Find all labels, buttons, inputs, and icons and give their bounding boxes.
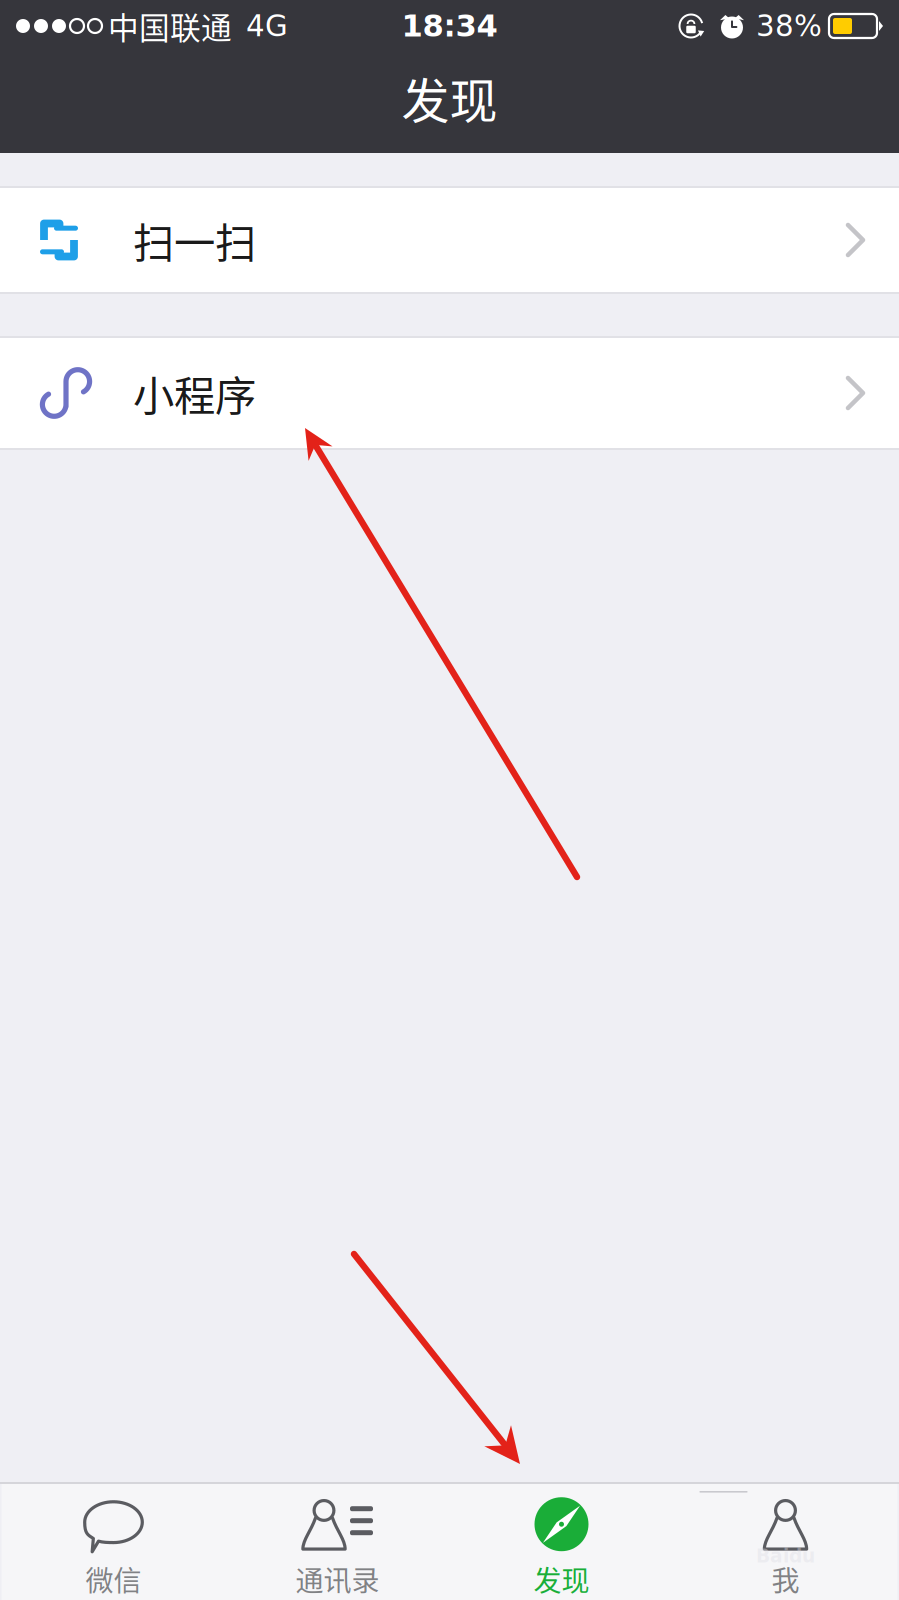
staticText: 扫一扫 bbox=[133, 210, 256, 270]
button[interactable]: 通讯录 bbox=[225, 1484, 449, 1600]
staticText: Baidu bbox=[756, 1545, 815, 1567]
staticText: 中国联通 bbox=[108, 4, 232, 48]
staticText: 通讯录 bbox=[295, 1559, 379, 1599]
staticText: 微信 bbox=[85, 1559, 141, 1599]
button[interactable]: 小程序 bbox=[0, 338, 899, 448]
staticText: 发现 bbox=[401, 63, 497, 132]
button[interactable]: 扫一扫 bbox=[0, 188, 899, 292]
staticText: 发现 bbox=[533, 1559, 589, 1599]
staticText: 我 bbox=[771, 1559, 799, 1599]
staticText: 18:34 bbox=[401, 8, 497, 44]
staticText: 38% bbox=[756, 9, 822, 43]
button[interactable]: 我 bbox=[673, 1484, 897, 1600]
staticText: 小程序 bbox=[133, 363, 256, 423]
button[interactable]: 微信 bbox=[1, 1484, 225, 1600]
staticText: 4G bbox=[246, 9, 288, 43]
button[interactable]: 发现 bbox=[449, 1484, 673, 1600]
